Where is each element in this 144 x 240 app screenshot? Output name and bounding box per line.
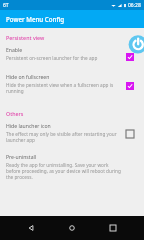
staticText: The effect may only be visible after res… — [6, 131, 122, 143]
staticText: 06:28 — [128, 2, 141, 9]
button[interactable]: Hide on fullscreen — [0, 74, 144, 94]
button[interactable]: Recents — [103, 218, 123, 238]
button[interactable]: Back — [21, 218, 41, 238]
staticText: Enable — [6, 47, 23, 54]
button[interactable]: Home — [62, 218, 82, 238]
staticText: Hide launcher icon — [6, 123, 51, 130]
staticText: Pre-uninstall — [6, 154, 37, 161]
staticText: Ready the app for uninstalling. Save you… — [6, 162, 122, 180]
staticText: Others — [6, 110, 24, 117]
staticText: Persistent view — [6, 34, 45, 41]
button[interactable]: Toggle — [124, 128, 136, 140]
button[interactable]: Toggle — [124, 51, 136, 63]
button[interactable]: Enable — [0, 47, 144, 61]
staticText: 6T — [3, 2, 9, 9]
staticText: Persistent on-screen launcher for the ap… — [6, 55, 98, 61]
staticText: Hide the persistent view when a fullscre… — [6, 82, 122, 94]
button[interactable]: Hide launcher icon — [0, 123, 144, 143]
button[interactable]: Toggle — [124, 80, 136, 92]
button[interactable]: Pre-uninstall — [0, 154, 144, 180]
staticText: Hide on fullscreen — [6, 74, 50, 81]
staticText: Power Menu Config — [6, 15, 65, 23]
